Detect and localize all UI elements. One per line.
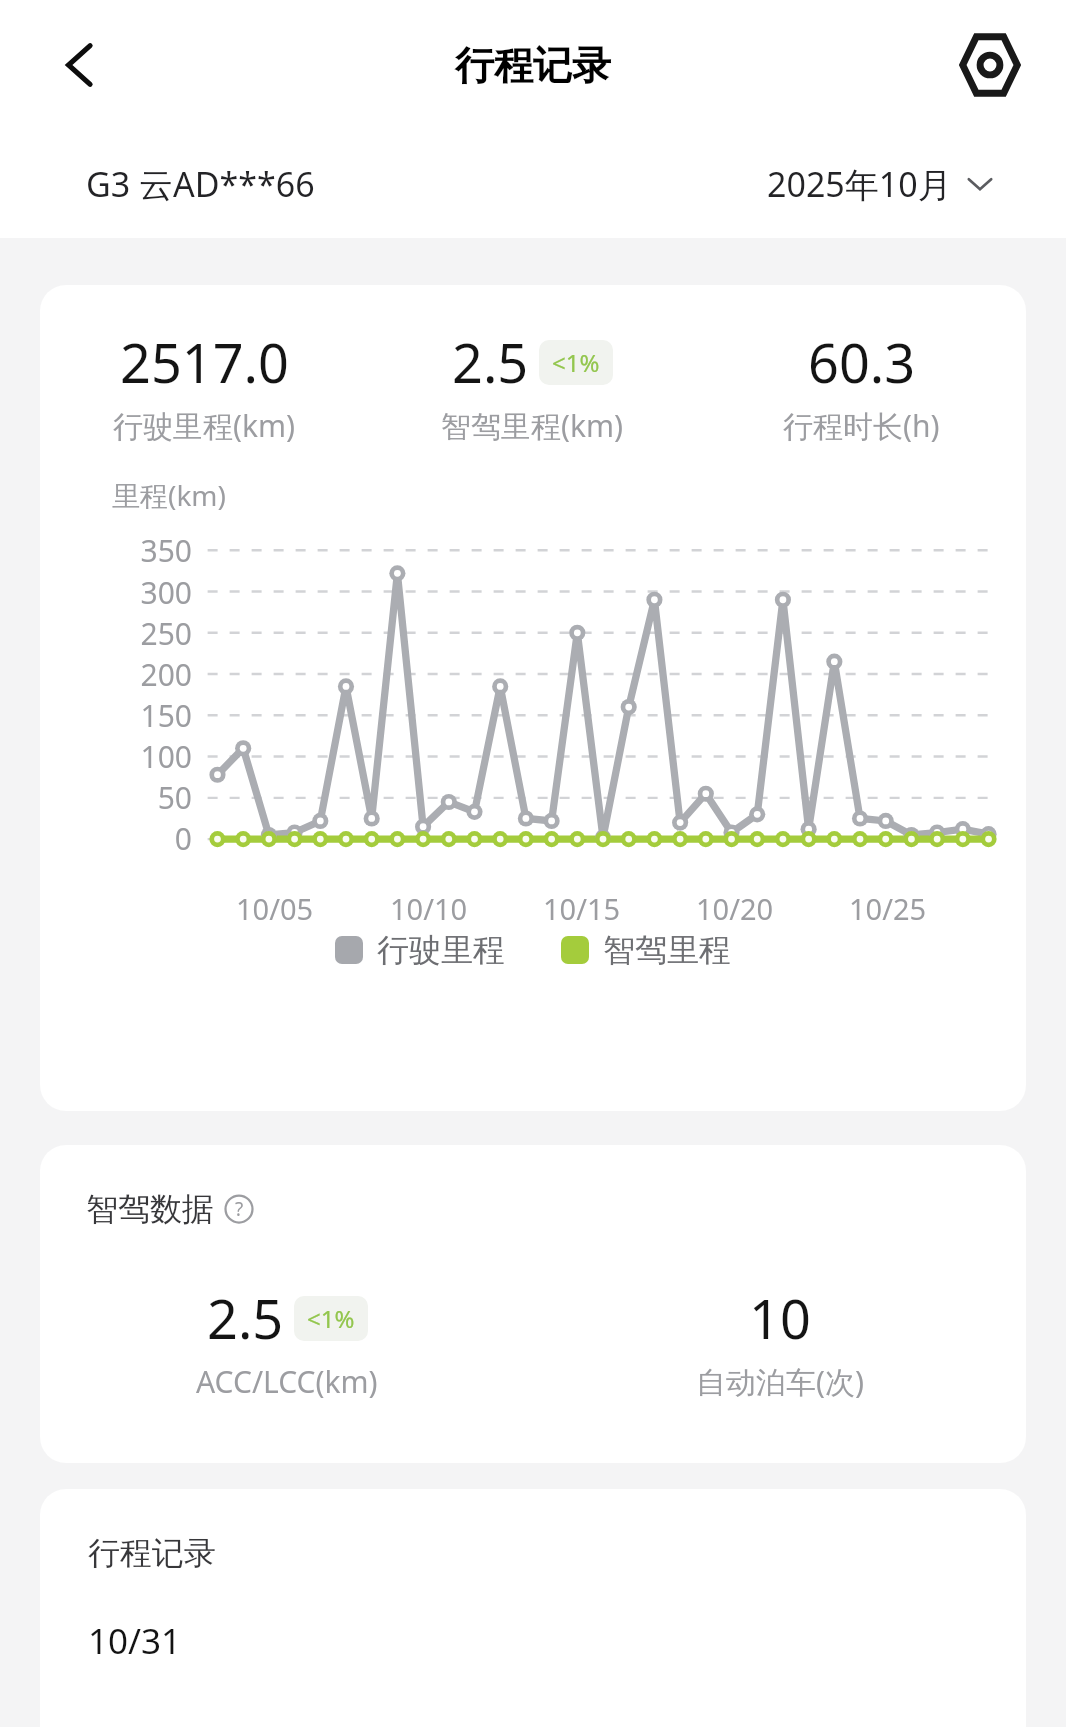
button[interactable]: 2025年10月 — [767, 161, 994, 207]
staticText: 60.3 — [808, 325, 916, 399]
staticText: 250 — [40, 613, 192, 654]
staticText: <1% — [307, 1302, 355, 1335]
button[interactable]: 行驶里程 — [335, 930, 505, 970]
staticText: 智驾里程 — [603, 930, 731, 970]
button[interactable]: 2517.0 — [40, 325, 368, 446]
staticText: 50 — [40, 777, 192, 818]
staticText: <1% — [552, 346, 600, 379]
staticText: 2.5 — [207, 1281, 284, 1355]
staticText: 行驶里程(km) — [113, 405, 296, 446]
staticText: 行程记录 — [455, 41, 611, 90]
staticText: 10/15 — [543, 889, 696, 928]
button[interactable]: Back — [38, 23, 122, 107]
staticText: 行程时长(h) — [783, 405, 940, 446]
staticText: 2025年10月 — [767, 161, 952, 207]
button[interactable]: 智驾里程 — [561, 930, 731, 970]
staticText: 0 — [40, 818, 192, 859]
button[interactable]: 10 — [573, 1281, 987, 1402]
staticText: ACC/LCC(km) — [196, 1361, 378, 1402]
button[interactable]: 60.3 — [697, 325, 1026, 446]
staticText: 200 — [40, 654, 192, 695]
staticText: 10/25 — [849, 889, 1002, 928]
button[interactable]: Service settings — [948, 23, 1032, 107]
staticText: 2.5 — [452, 325, 529, 399]
staticText: 10/05 — [236, 889, 390, 928]
staticText: 智驾里程(km) — [441, 405, 624, 446]
staticText: 10/20 — [696, 889, 849, 928]
staticText: 2517.0 — [120, 325, 289, 399]
staticText: 行程记录 — [88, 1533, 216, 1573]
staticText: 10/10 — [390, 889, 543, 928]
staticText: 350 — [40, 530, 192, 571]
button[interactable]: 2.5 — [368, 325, 697, 446]
staticText: G3 云AD***66 — [86, 161, 315, 207]
staticText: ? — [235, 1196, 244, 1222]
button[interactable]: 10/31 — [88, 1617, 182, 1665]
button[interactable]: 智驾数据 — [86, 1189, 256, 1229]
staticText: 智驾数据 — [86, 1189, 214, 1229]
staticText: 自动泊车(次) — [696, 1361, 864, 1402]
staticText: 行驶里程 — [377, 930, 505, 970]
staticText: 300 — [40, 572, 192, 613]
button[interactable]: 2.5 — [80, 1281, 494, 1402]
staticText: 150 — [40, 695, 192, 736]
staticText: 10 — [749, 1281, 811, 1355]
staticText: 里程(km) — [112, 476, 226, 514]
staticText: 100 — [40, 736, 192, 777]
